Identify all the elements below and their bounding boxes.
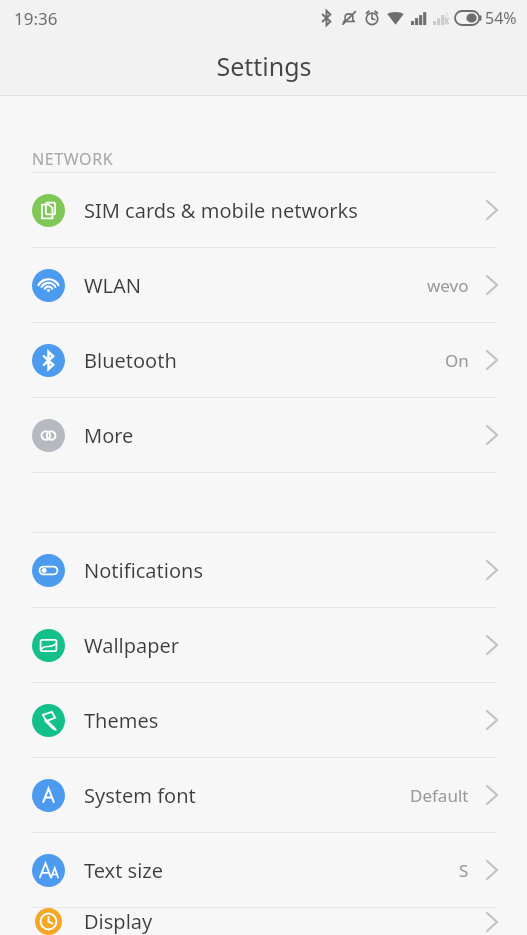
staticText: System font bbox=[84, 782, 196, 809]
staticText: wevo bbox=[427, 274, 469, 297]
staticText: NETWORK bbox=[32, 148, 114, 170]
staticText: SIM cards & mobile networks bbox=[84, 197, 358, 224]
staticText: Settings bbox=[216, 49, 312, 83]
staticText: WLAN bbox=[84, 272, 142, 299]
button[interactable]: Bluetooth bbox=[0, 323, 527, 397]
staticText: Themes bbox=[84, 707, 159, 734]
button[interactable]: WLAN bbox=[0, 248, 527, 322]
staticText: 19:36 bbox=[14, 7, 58, 30]
button[interactable]: Display bbox=[0, 908, 527, 935]
staticText: Notifications bbox=[84, 557, 203, 584]
staticText: Text size bbox=[84, 857, 164, 884]
staticText: Default bbox=[410, 784, 469, 807]
button[interactable]: More bbox=[0, 398, 527, 472]
button[interactable]: System font bbox=[0, 758, 527, 832]
staticText: On bbox=[445, 349, 469, 372]
staticText: Bluetooth bbox=[84, 347, 177, 374]
staticText: Display bbox=[84, 908, 153, 935]
button[interactable]: SIM cards & mobile networks bbox=[0, 173, 527, 247]
staticText: S bbox=[459, 859, 469, 882]
button[interactable]: Text size bbox=[0, 833, 527, 907]
staticText: 54% bbox=[485, 7, 517, 29]
staticText: Wallpaper bbox=[84, 632, 180, 659]
button[interactable]: Notifications bbox=[0, 533, 527, 607]
button[interactable]: Wallpaper bbox=[0, 608, 527, 682]
staticText: More bbox=[84, 422, 134, 449]
button[interactable]: Themes bbox=[0, 683, 527, 757]
